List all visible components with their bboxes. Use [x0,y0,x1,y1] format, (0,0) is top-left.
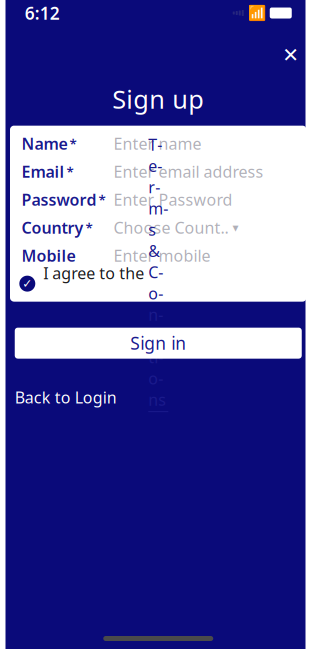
staticText: Mobile [21,245,75,266]
button[interactable]: Country [11,214,308,242]
staticText: Password [21,189,96,210]
staticText: Name [21,133,67,154]
button[interactable]: Sign in [15,328,302,359]
button[interactable]: ✓ [10,270,309,298]
button[interactable]: Password [11,186,308,214]
button[interactable]: Close [274,40,308,70]
staticText: Country [21,217,83,238]
staticText: ✕ [282,44,299,66]
staticText: * [66,163,73,180]
staticText: Enter name [113,133,201,154]
staticText: 📶 [248,5,266,21]
staticText: Sign up [112,82,204,116]
staticText: 6:12 [25,1,60,24]
staticText: Back to Login [15,387,117,408]
staticText: Sign in [130,332,186,355]
button[interactable]: Name [11,130,308,158]
button[interactable]: Email [11,158,308,186]
staticText: ✓ [22,277,32,290]
staticText: Choose Count.. [113,217,228,238]
staticText: Terms & Conditions [148,134,168,410]
staticText: Enter Password [113,189,232,210]
staticText: Enter mobile [113,245,210,266]
staticText: * [69,135,76,152]
staticText: * [98,191,105,208]
button[interactable]: Back to Login [3,381,129,414]
staticText: Enter email address [113,161,263,182]
staticText: * [85,219,92,236]
staticText: I agree to the [43,262,144,284]
staticText: Email [21,161,64,182]
staticText: ▾ [232,221,238,234]
button[interactable]: Mobile [11,242,308,270]
